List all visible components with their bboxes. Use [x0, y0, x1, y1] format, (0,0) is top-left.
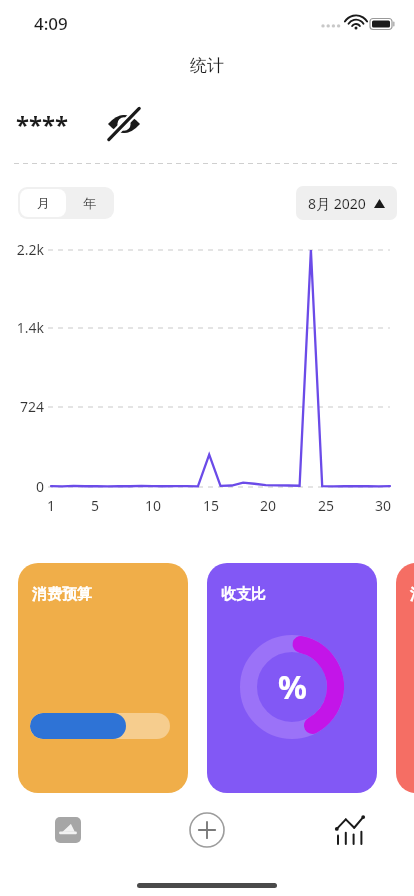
- staticText: 1: [47, 496, 56, 515]
- staticText: 1.4k: [16, 318, 44, 337]
- staticText: 消费预算: [32, 585, 92, 604]
- staticText: 5: [91, 496, 100, 515]
- staticText: 8月 2020: [308, 194, 366, 213]
- staticText: 10: [145, 496, 162, 515]
- button[interactable]: 月: [20, 189, 66, 217]
- button[interactable]: 年: [66, 189, 112, 217]
- button[interactable]: 8月 2020: [296, 186, 397, 220]
- staticText: %: [278, 665, 307, 709]
- button[interactable]: 消费预算: [18, 563, 188, 793]
- staticText: 收支比: [221, 585, 266, 604]
- staticText: 0: [35, 477, 44, 496]
- staticText: 15: [203, 496, 220, 515]
- staticText: 月: [37, 195, 50, 211]
- staticText: ****: [16, 108, 69, 141]
- button[interactable]: 消费: [396, 563, 414, 793]
- staticText: 年: [83, 195, 96, 211]
- staticText: 2.2k: [16, 240, 44, 259]
- button[interactable]: Hide amount: [98, 104, 150, 144]
- button[interactable]: Add: [182, 805, 232, 855]
- staticText: 统计: [0, 55, 414, 76]
- staticText: 25: [318, 496, 335, 515]
- staticText: 724: [19, 397, 44, 416]
- staticText: 消费: [410, 585, 414, 604]
- staticText: 4:09: [34, 12, 68, 35]
- button[interactable]: Statistics: [320, 805, 380, 855]
- staticText: 20: [260, 496, 277, 515]
- button[interactable]: 收支比: [207, 563, 377, 793]
- staticText: 30: [375, 496, 392, 515]
- button[interactable]: Accounts: [38, 805, 98, 855]
